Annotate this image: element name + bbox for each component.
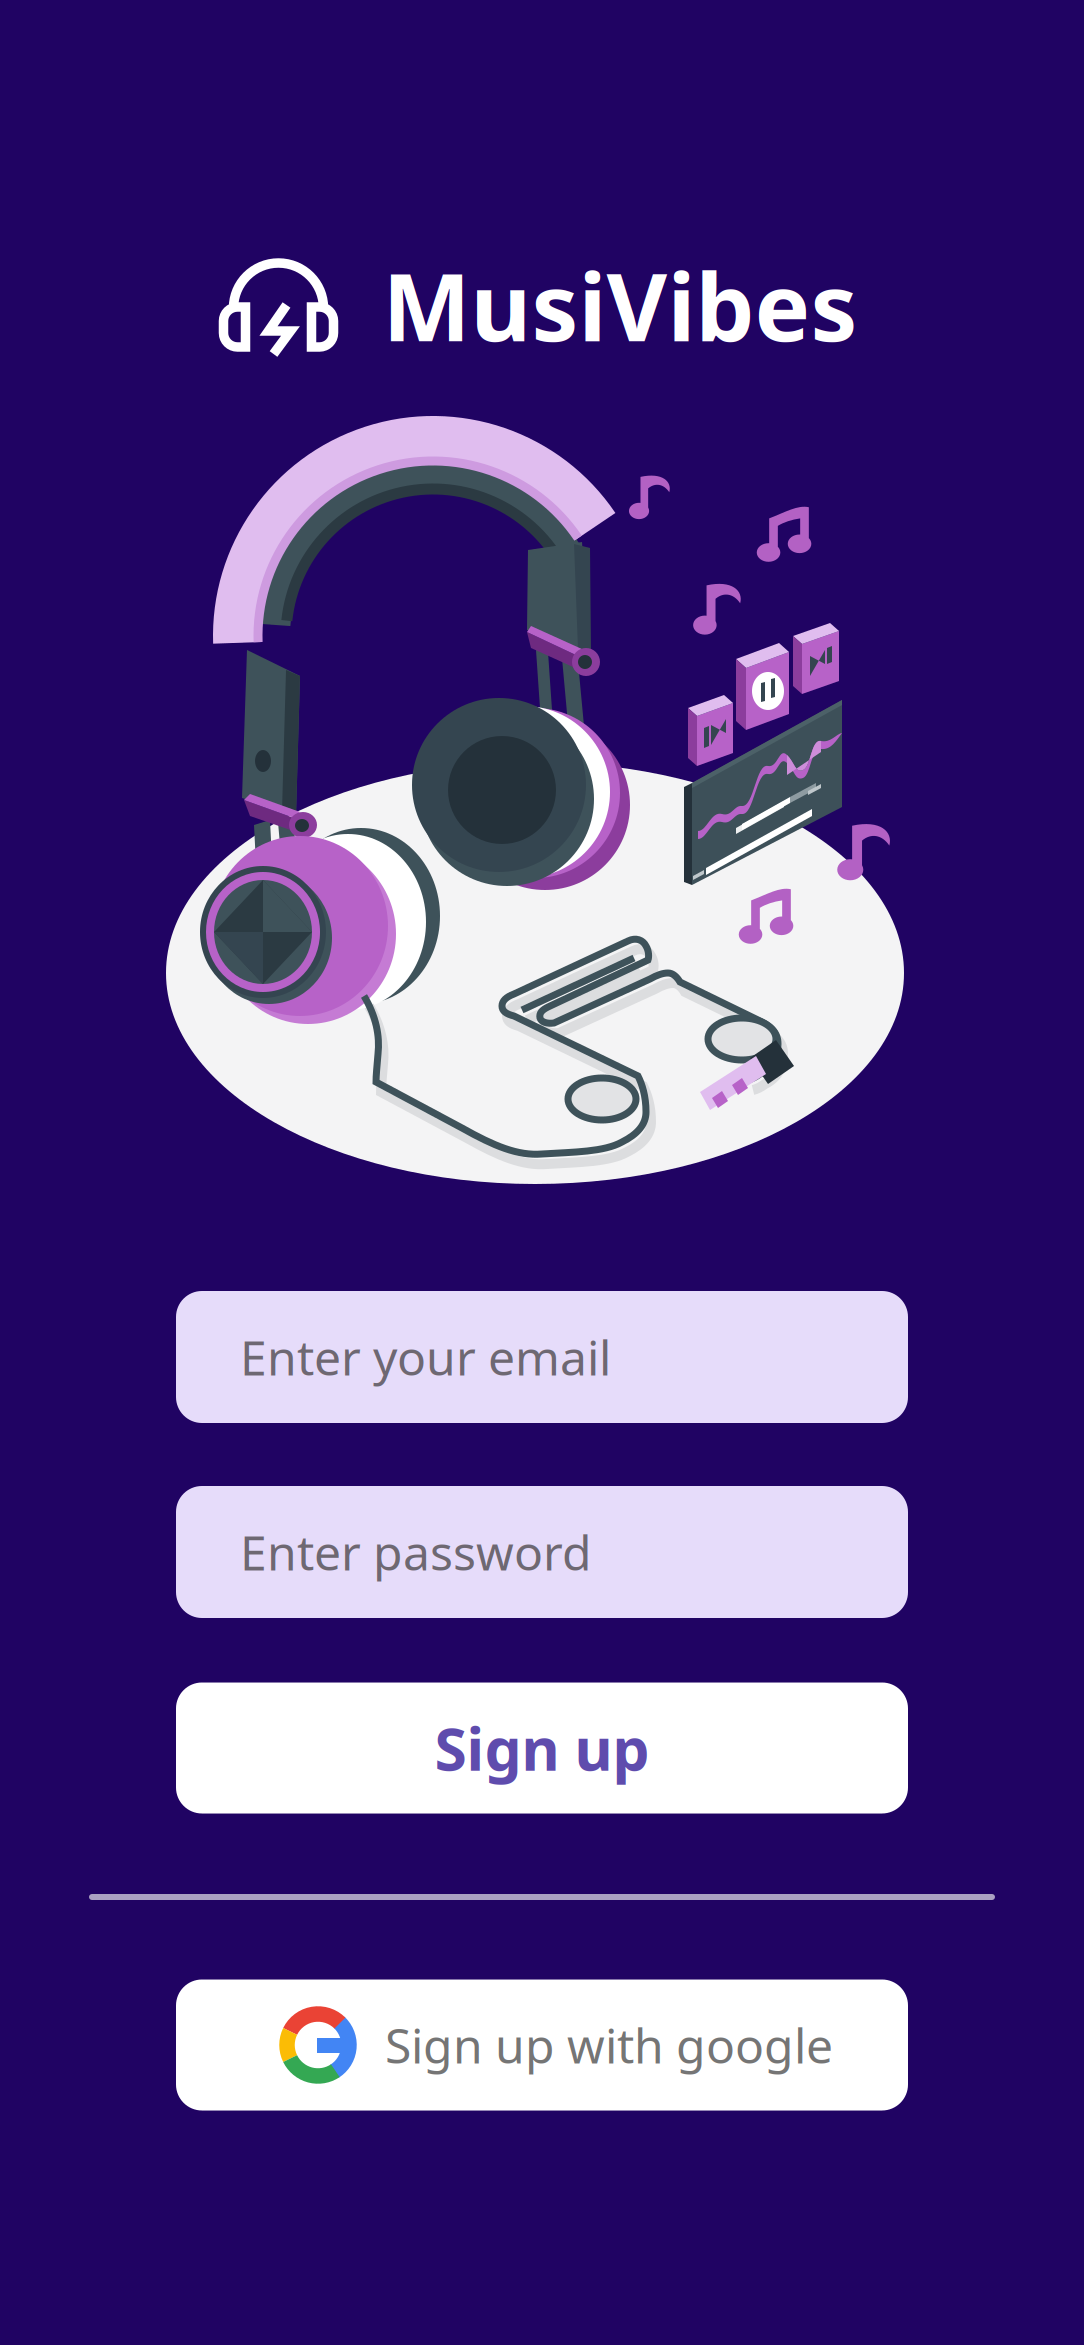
staticText: Enter your email [240, 1325, 611, 1389]
staticText: Sign up with google [385, 2013, 833, 2077]
button[interactable]: Enter your email [176, 1291, 908, 1423]
button[interactable]: Sign up with google [176, 1979, 908, 2110]
button[interactable]: Enter password [176, 1486, 908, 1618]
staticText: Sign up [434, 1709, 649, 1787]
button[interactable]: Sign up [176, 1682, 908, 1813]
staticText: MusiVibes [382, 243, 857, 367]
staticText: Enter password [240, 1520, 592, 1584]
